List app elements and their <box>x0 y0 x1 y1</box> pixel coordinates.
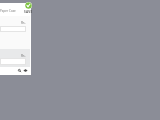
button[interactable] <box>0 58 26 65</box>
button[interactable]: Print <box>24 69 27 72</box>
staticText: Paper Case <box>0 9 16 13</box>
button[interactable]: Paper Case <box>0 3 31 75</box>
staticText: Rs. <box>21 53 26 57</box>
button[interactable]: Search <box>18 69 21 72</box>
button[interactable] <box>0 26 26 32</box>
button[interactable]: Verified <box>25 2 32 9</box>
staticText: Rs. <box>21 20 26 24</box>
staticText: SAVE <box>24 10 33 14</box>
